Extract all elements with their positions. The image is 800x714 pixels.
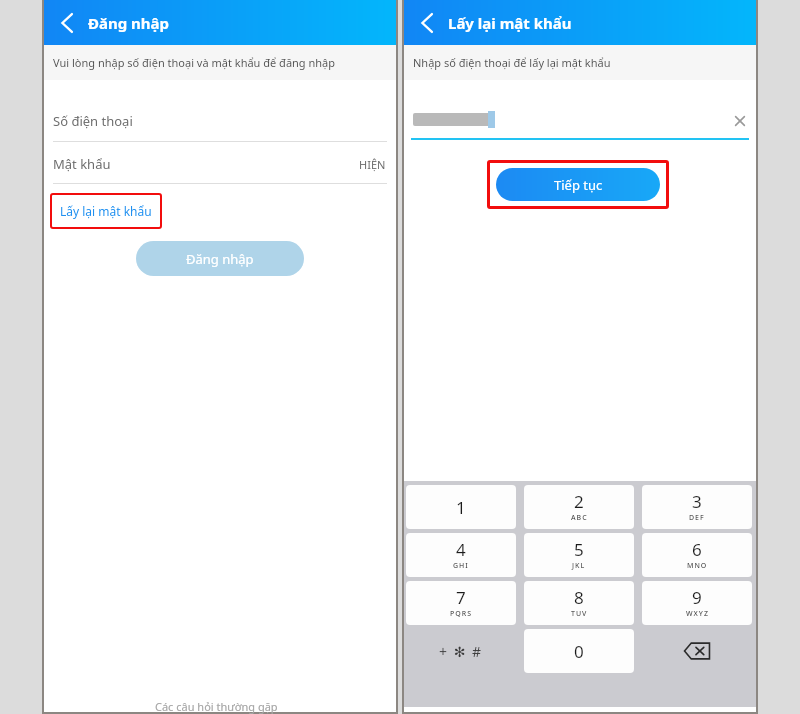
button[interactable]: Tiếp tục <box>496 168 660 201</box>
staticText: Mật khẩu <box>53 155 111 173</box>
staticText: 6 <box>692 538 702 561</box>
staticText: Vui lòng nhập số điện thoại và mật khẩu … <box>53 55 336 70</box>
staticText: Nhập số điện thoại để lấy lại mật khẩu <box>413 55 611 70</box>
button[interactable]: 3 <box>642 485 752 529</box>
staticText: 7 <box>456 586 466 609</box>
button[interactable]: Back <box>54 9 82 37</box>
staticText: DEF <box>689 513 705 523</box>
button[interactable]: 4 <box>406 533 516 577</box>
staticText: JKL <box>572 561 586 571</box>
button[interactable]: 1 <box>406 485 516 529</box>
staticText: Đăng nhập <box>88 13 170 33</box>
button[interactable]: HIỆN <box>359 157 386 172</box>
staticText: Các câu hỏi thường gặp <box>155 699 278 714</box>
staticText: Lấy lại mật khẩu <box>60 203 152 219</box>
staticText: PQRS <box>450 609 473 619</box>
staticText: MNO <box>687 561 708 571</box>
staticText: GHI <box>453 561 469 571</box>
button[interactable]: 5 <box>524 533 634 577</box>
button[interactable]: 7 <box>406 581 516 625</box>
button[interactable]: Symbols <box>406 629 516 673</box>
staticText: Số điện thoại <box>53 112 133 130</box>
staticText: ABC <box>571 513 588 523</box>
staticText: WXYZ <box>686 609 709 619</box>
staticText: TUV <box>571 609 588 619</box>
button[interactable]: Clear <box>730 111 750 131</box>
staticText: 5 <box>574 538 584 561</box>
button[interactable]: Backspace <box>642 629 752 673</box>
staticText: 1 <box>456 496 466 519</box>
button[interactable]: Back <box>414 9 442 37</box>
button[interactable]: 9 <box>642 581 752 625</box>
staticText: 4 <box>456 538 466 561</box>
staticText: 9 <box>692 586 702 609</box>
button[interactable]: 2 <box>524 485 634 529</box>
button[interactable]: 6 <box>642 533 752 577</box>
button[interactable]: 8 <box>524 581 634 625</box>
button[interactable]: 0 <box>524 629 634 673</box>
button[interactable]: Đăng nhập <box>136 241 304 276</box>
staticText: Đăng nhập <box>186 250 254 268</box>
staticText: Lấy lại mật khẩu <box>448 13 572 33</box>
staticText: 3 <box>692 490 702 513</box>
staticText: 0 <box>574 640 584 663</box>
button[interactable]: Lấy lại mật khẩu <box>50 193 162 229</box>
staticText: + ✻ # <box>439 642 483 661</box>
staticText: 2 <box>574 490 584 513</box>
staticText: 8 <box>574 586 584 609</box>
staticText: Tiếp tục <box>554 176 603 194</box>
